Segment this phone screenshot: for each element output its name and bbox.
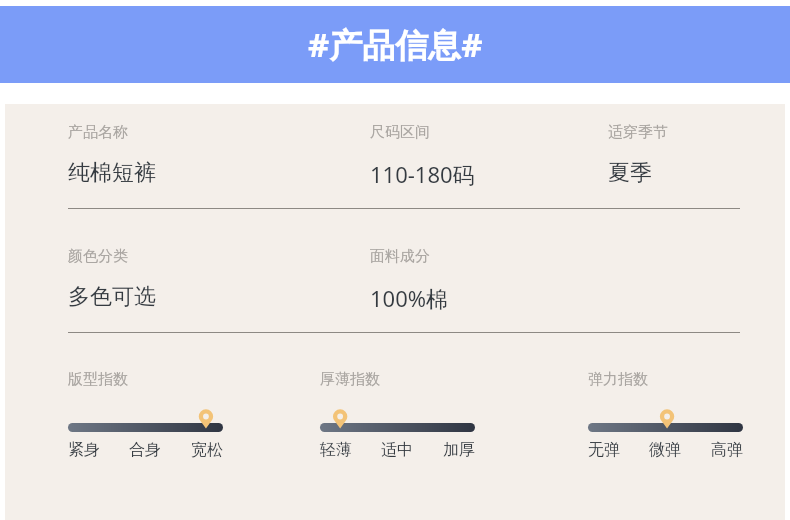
staticText: 纯棉短裤 [68, 159, 156, 187]
button[interactable]: 厚薄指数 [320, 370, 475, 460]
button[interactable]: 尺码区间 [370, 123, 608, 189]
staticText: 100%棉 [370, 283, 449, 313]
staticText: 加厚 [423, 440, 475, 460]
staticText: 尺码区间 [370, 123, 430, 142]
button[interactable]: 弹力指数 [588, 370, 743, 460]
staticText: 轻薄 [320, 440, 371, 460]
button[interactable]: 产品名称 [68, 123, 370, 187]
button[interactable]: 版型指数 [68, 370, 223, 460]
staticText: 面料成分 [370, 247, 430, 266]
staticText: 紧身 [68, 440, 119, 460]
staticText: 多色可选 [68, 283, 156, 311]
staticText: 厚薄指数 [320, 370, 380, 389]
staticText: #产品信息# [308, 22, 483, 67]
staticText: 宽松 [171, 440, 223, 460]
button[interactable]: #产品信息# [0, 6, 790, 83]
staticText: 无弹 [588, 440, 639, 460]
staticText: 110-180码 [370, 159, 475, 189]
button[interactable]: 面料成分 [370, 247, 608, 313]
button[interactable]: 适穿季节 [608, 123, 758, 187]
staticText: 弹力指数 [588, 370, 648, 389]
staticText: 合身 [119, 440, 171, 460]
other: 版型指数 [68, 401, 223, 432]
staticText: 产品名称 [68, 123, 128, 142]
staticText: 颜色分类 [68, 247, 128, 266]
staticText: 版型指数 [68, 370, 128, 389]
button[interactable]: 颜色分类 [68, 247, 370, 311]
staticText: 适中 [371, 440, 423, 460]
other: 弹力指数 [588, 401, 743, 432]
staticText: 高弹 [691, 440, 743, 460]
other: 厚薄指数 [320, 401, 475, 432]
staticText: 夏季 [608, 159, 652, 187]
staticText: 适穿季节 [608, 123, 668, 142]
staticText: 微弹 [639, 440, 691, 460]
